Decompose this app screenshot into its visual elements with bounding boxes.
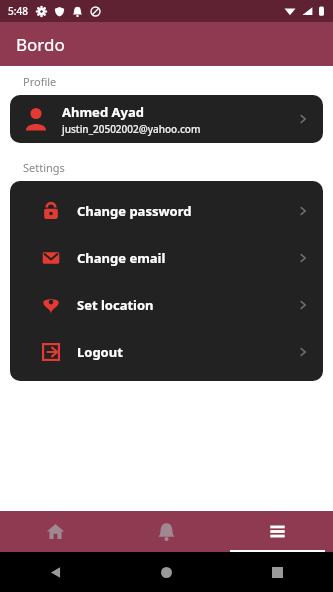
staticText: Change password	[77, 202, 297, 220]
staticText: Profile	[23, 74, 57, 89]
button[interactable]: Ahmed Ayad	[10, 95, 323, 143]
staticText: Logout	[77, 343, 297, 361]
button[interactable]: Change email	[10, 234, 323, 281]
button[interactable]: Home	[0, 511, 111, 552]
staticText: 5:48	[8, 4, 28, 18]
button[interactable]: Set location	[10, 281, 323, 328]
staticText: Bordo	[16, 33, 65, 56]
staticText: justin_20502002@yahoo.com	[62, 122, 201, 136]
staticText: Ahmed Ayad	[62, 103, 144, 121]
button[interactable]: Logout	[10, 328, 323, 375]
button[interactable]: Notifications	[111, 511, 222, 552]
button[interactable]: Menu	[222, 511, 333, 552]
staticText: Set location	[77, 296, 297, 314]
staticText: Settings	[23, 160, 65, 175]
button[interactable]: Change password	[10, 187, 323, 234]
staticText: Change email	[77, 249, 297, 267]
